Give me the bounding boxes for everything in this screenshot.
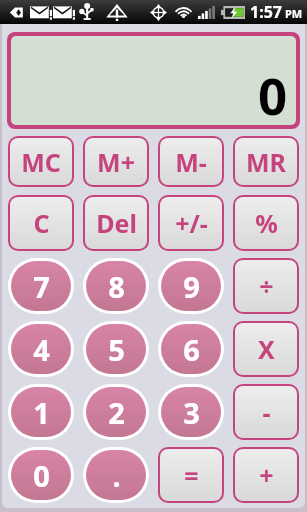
staticText: %	[255, 206, 278, 240]
button[interactable]: 7	[11, 261, 71, 311]
button[interactable]: -	[235, 386, 297, 438]
staticText: 2	[108, 393, 125, 432]
button[interactable]: 3	[161, 387, 221, 437]
staticText: M+	[97, 145, 135, 179]
button[interactable]: 4	[11, 324, 71, 374]
staticText: 1	[33, 393, 50, 432]
staticText: =	[184, 458, 199, 492]
button[interactable]: +/-	[160, 197, 222, 249]
staticText: X	[258, 332, 275, 366]
staticText: 5	[108, 330, 125, 369]
staticText: 4	[33, 330, 50, 369]
button[interactable]: 5	[86, 324, 146, 374]
staticText: C	[33, 206, 50, 240]
button[interactable]: C	[10, 197, 72, 249]
staticText: MC	[21, 145, 61, 179]
staticText: 0	[258, 60, 288, 125]
staticText: +	[259, 458, 274, 492]
button[interactable]: 1	[11, 387, 71, 437]
button[interactable]: =	[160, 449, 222, 501]
button[interactable]: MR	[235, 138, 297, 185]
staticText: 1:57	[250, 1, 282, 23]
button[interactable]: Del	[85, 197, 147, 249]
button[interactable]: 9	[161, 261, 221, 311]
staticText: 7	[33, 267, 50, 306]
button[interactable]: 8	[86, 261, 146, 311]
button[interactable]: MC	[10, 138, 72, 185]
button[interactable]: X	[235, 323, 297, 375]
button[interactable]: +	[235, 449, 297, 501]
button[interactable]: %	[235, 197, 297, 249]
staticText: PM	[285, 6, 303, 21]
button[interactable]: ÷	[235, 260, 297, 312]
button[interactable]: 0	[11, 450, 71, 500]
staticText: 9	[183, 267, 200, 306]
staticText: Del	[96, 206, 137, 240]
button[interactable]: M+	[85, 138, 147, 185]
staticText: +/-	[175, 206, 208, 240]
button[interactable]: 2	[86, 387, 146, 437]
button[interactable]: 6	[161, 324, 221, 374]
staticText: .	[112, 456, 121, 495]
button[interactable]: M-	[160, 138, 222, 185]
staticText: M-	[175, 145, 207, 179]
staticText: 0	[33, 456, 50, 495]
staticText: -	[262, 395, 271, 429]
staticText: MR	[246, 145, 286, 179]
staticText: 8	[108, 267, 125, 306]
staticText: 3	[183, 393, 200, 432]
staticText: ÷	[259, 269, 274, 303]
staticText: 6	[183, 330, 200, 369]
button[interactable]: .	[86, 450, 146, 500]
